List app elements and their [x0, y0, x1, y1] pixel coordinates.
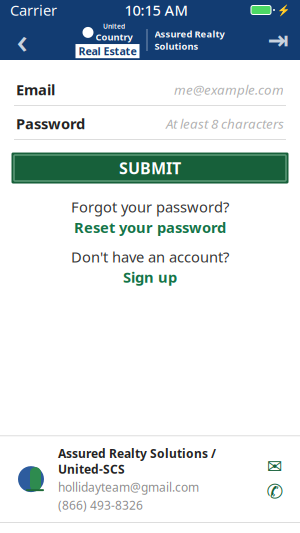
staticText: At least 8 characters	[166, 115, 284, 132]
staticText: Real Estate	[78, 44, 136, 58]
button[interactable]: Back	[0, 20, 44, 60]
staticText: Carrier	[10, 0, 57, 20]
staticText: United	[103, 22, 125, 31]
staticText: Password	[16, 114, 85, 133]
button[interactable]: Password	[0, 108, 300, 140]
staticText: Assured Realty	[154, 28, 224, 40]
staticText: Forgot your password?	[71, 197, 229, 216]
staticText: ✆	[266, 480, 283, 503]
staticText: 10:15 AM	[124, 0, 187, 20]
button[interactable]: Reset your password	[74, 217, 226, 237]
staticText: ⇥	[267, 26, 288, 54]
staticText: ⚡	[277, 4, 290, 16]
staticText: Solutions	[154, 40, 198, 52]
staticText: Assured Realty Solutions / United-SCS	[58, 445, 216, 477]
button[interactable]: Sign out	[256, 20, 300, 60]
button[interactable]: SUBMIT	[12, 153, 288, 183]
staticText: SUBMIT	[119, 157, 181, 179]
button[interactable]: Email	[264, 459, 286, 475]
button[interactable]: Call	[264, 484, 286, 500]
staticText: ✉	[267, 456, 283, 477]
button[interactable]: Sign up	[123, 267, 177, 287]
staticText: Email	[16, 80, 55, 99]
staticText: ‹	[16, 17, 27, 63]
button[interactable]: Email	[0, 74, 300, 106]
staticText: Sign up	[123, 267, 177, 287]
staticText: Country	[95, 31, 132, 43]
staticText: hollidayteam@gmail.com	[58, 479, 199, 495]
staticText: Don't have an account?	[71, 247, 229, 266]
staticText: Reset your password	[74, 217, 226, 237]
staticText: me@example.com	[174, 81, 284, 98]
staticText: (866) 493-8326	[58, 497, 143, 513]
